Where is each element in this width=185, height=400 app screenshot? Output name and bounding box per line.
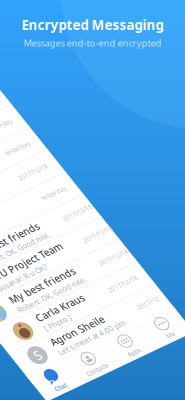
staticText: Encrypted Messaging: [21, 16, 163, 34]
staticText: 2017/12/18: [0, 360, 15, 369]
staticText: 2017/12/18: [0, 249, 4, 258]
staticText: Messages end-to-end encrypted: [23, 37, 161, 49]
staticText: 10:33: [0, 166, 4, 175]
staticText: 10:33: [0, 138, 4, 147]
staticText: 2017/12/18: [0, 304, 15, 313]
staticText: Yesterday: [0, 277, 4, 285]
staticText: 2017/12/18: [0, 332, 17, 341]
